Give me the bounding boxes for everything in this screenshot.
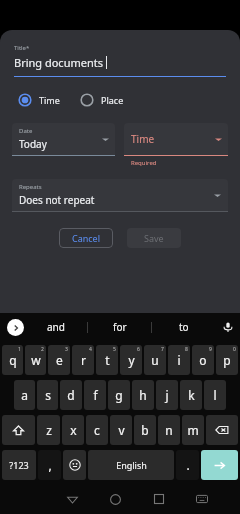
button[interactable]: q (2, 345, 23, 375)
button[interactable]: t (96, 345, 118, 375)
button[interactable]: Save (127, 228, 181, 248)
staticText: l (213, 387, 217, 403)
button[interactable]: . (176, 450, 199, 480)
staticText: z (46, 422, 52, 438)
button[interactable]: m (182, 415, 204, 445)
button[interactable]: Shift (2, 415, 35, 445)
button[interactable]: w (25, 345, 46, 375)
button[interactable]: Cancel (59, 228, 113, 248)
button[interactable]: for (88, 313, 152, 341)
button[interactable]: Repeats (12, 179, 228, 211)
button[interactable]: d (60, 380, 82, 410)
staticText: , (48, 457, 52, 473)
button[interactable]: Expand suggestions (7, 319, 24, 336)
button[interactable]: Home (94, 484, 137, 514)
staticText: 2 (41, 346, 44, 353)
button[interactable]: Back (51, 484, 94, 514)
staticText: Today (19, 137, 47, 151)
staticText: y (128, 352, 135, 368)
button[interactable]: Time (124, 123, 228, 155)
staticText: Does not repeat (19, 193, 95, 207)
button[interactable]: , (38, 450, 61, 480)
staticText: . (186, 457, 190, 473)
staticText: 1 (18, 346, 21, 353)
button[interactable]: u (144, 345, 166, 375)
button[interactable]: j (156, 380, 178, 410)
button[interactable]: and (24, 313, 88, 341)
button[interactable]: Date (12, 123, 115, 155)
button[interactable]: f (84, 380, 106, 410)
button[interactable]: Voice input (216, 313, 240, 341)
button[interactable]: l (204, 380, 226, 410)
button[interactable]: o (192, 345, 214, 375)
button[interactable]: v (110, 415, 132, 445)
staticText: h (139, 387, 147, 403)
staticText: x (70, 422, 77, 438)
staticText: 0 (233, 346, 236, 353)
button[interactable]: b (134, 415, 156, 445)
button[interactable]: x (62, 415, 84, 445)
staticText: English (116, 459, 147, 471)
button[interactable]: h (132, 380, 154, 410)
staticText: k (188, 387, 195, 403)
staticText: j (165, 387, 169, 403)
staticText: i (177, 352, 181, 368)
button[interactable]: ?123 (2, 450, 36, 480)
button[interactable]: English (88, 450, 174, 480)
staticText: 9 (209, 346, 212, 353)
staticText: Bring documents (14, 55, 103, 70)
button[interactable]: Emoji (63, 450, 86, 480)
staticText: Repeats (19, 183, 42, 191)
button[interactable]: Backspace (206, 415, 238, 445)
button[interactable]: p (216, 345, 238, 375)
button[interactable]: z (37, 415, 60, 445)
button[interactable]: Title* (14, 44, 226, 77)
staticText: Required (131, 159, 157, 167)
staticText: 7 (161, 346, 164, 353)
button[interactable]: g (108, 380, 130, 410)
staticText: 6 (137, 346, 140, 353)
staticText: ?123 (9, 459, 29, 471)
staticText: Place (101, 94, 124, 106)
staticText: and (47, 320, 65, 334)
button[interactable]: c (86, 415, 108, 445)
button[interactable]: k (180, 380, 202, 410)
button[interactable]: Recents (137, 484, 180, 514)
button[interactable]: to (152, 313, 216, 341)
staticText: r (81, 352, 86, 368)
staticText: p (223, 352, 231, 368)
staticText: w (31, 352, 41, 368)
button[interactable]: y (120, 345, 142, 375)
button[interactable]: e (48, 345, 70, 375)
staticText: n (165, 422, 173, 438)
staticText: Time (39, 94, 60, 106)
staticText: 3 (65, 346, 68, 353)
staticText: Save (144, 232, 164, 244)
staticText: e (56, 352, 63, 368)
staticText: 8 (185, 346, 188, 353)
button[interactable]: i (168, 345, 190, 375)
button[interactable]: s (37, 380, 58, 410)
button[interactable]: Enter (201, 450, 238, 480)
staticText: f (93, 387, 98, 403)
staticText: t (105, 352, 110, 368)
staticText: Time (131, 132, 155, 146)
staticText: b (141, 422, 149, 438)
staticText: c (94, 422, 100, 438)
button[interactable]: Place (80, 93, 130, 107)
staticText: d (67, 387, 75, 403)
staticText: Date (19, 127, 33, 135)
staticText: s (45, 387, 51, 403)
staticText: 4 (89, 346, 92, 353)
button[interactable]: Time (18, 93, 66, 107)
button[interactable]: Hide keyboard (180, 484, 223, 514)
staticText: Title* (14, 44, 30, 52)
staticText: for (113, 320, 127, 334)
button[interactable]: a (14, 380, 35, 410)
staticText: Cancel (72, 232, 101, 244)
button[interactable]: r (72, 345, 94, 375)
staticText: v (118, 422, 125, 438)
staticText: u (151, 352, 159, 368)
button[interactable]: n (158, 415, 180, 445)
staticText: to (179, 320, 189, 334)
